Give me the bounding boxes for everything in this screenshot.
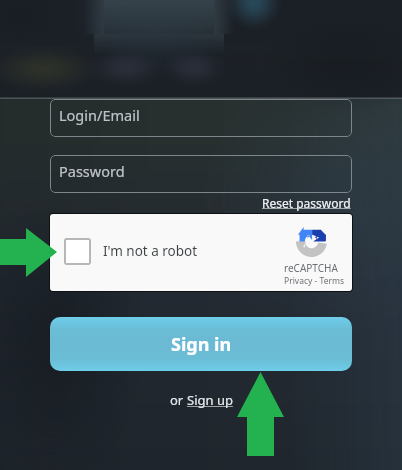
staticText: I'm not a robot bbox=[103, 242, 198, 260]
staticText: Sign up bbox=[187, 391, 233, 409]
button[interactable]: Login/Email bbox=[50, 99, 352, 137]
button[interactable]: Sign up bbox=[187, 391, 233, 409]
staticText: Privacy - Terms bbox=[284, 275, 344, 287]
staticText: Password bbox=[59, 161, 125, 181]
button[interactable]: Password bbox=[50, 155, 352, 193]
button[interactable]: I'm not a robot checkbox bbox=[64, 238, 91, 265]
button[interactable]: Reset password bbox=[261, 194, 352, 212]
staticText: Reset password bbox=[262, 195, 351, 211]
button[interactable]: Sign in bbox=[50, 317, 352, 371]
staticText: or bbox=[170, 391, 187, 409]
staticText: Sign in bbox=[171, 332, 232, 357]
staticText: reCAPTCHA bbox=[284, 261, 338, 275]
staticText: Login/Email bbox=[59, 105, 140, 125]
